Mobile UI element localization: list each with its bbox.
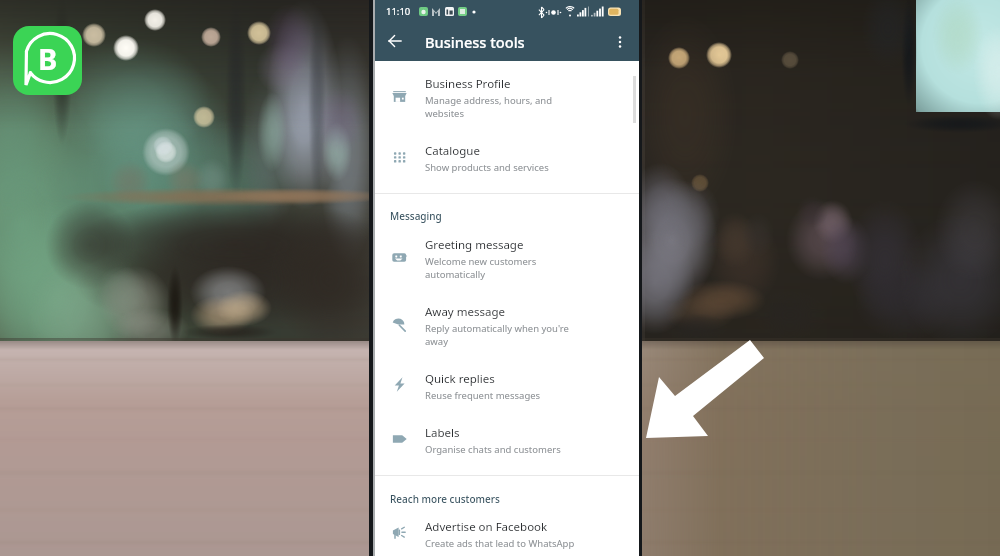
staticText: Catalogue	[425, 143, 480, 159]
staticText: Business Profile	[425, 76, 511, 92]
staticText: Welcome new customers automatically	[425, 255, 537, 281]
button[interactable]: Quick replies	[375, 364, 639, 412]
staticText: Manage address, hours, and websites	[425, 94, 553, 120]
staticText: 11:10	[386, 5, 411, 18]
button[interactable]: Away message	[375, 297, 639, 359]
staticText: Organise chats and customers	[425, 443, 561, 456]
staticText: Create ads that lead to WhatsApp	[425, 537, 575, 550]
staticText: Away message	[425, 304, 505, 320]
staticText: Reply automatically when you're away	[425, 322, 569, 348]
staticText: Quick replies	[425, 371, 495, 387]
button[interactable]: Labels	[375, 418, 639, 466]
button[interactable]: Business Profile	[375, 69, 639, 131]
staticText: Greeting message	[425, 237, 524, 253]
button[interactable]: Back	[381, 27, 409, 55]
button[interactable]: Catalogue	[375, 136, 639, 184]
staticText: Advertise on Facebook	[425, 519, 548, 535]
button[interactable]: Greeting message	[375, 230, 639, 292]
staticText: Business tools	[425, 32, 525, 52]
button[interactable]: Advertise on Facebook	[375, 512, 639, 556]
staticText: Messaging	[390, 209, 442, 223]
button[interactable]: More options	[606, 28, 634, 56]
staticText: Reuse frequent messages	[425, 389, 541, 402]
staticText: B	[38, 39, 58, 78]
staticText: Labels	[425, 425, 460, 441]
staticText: Reach more customers	[390, 492, 500, 506]
staticText: Show products and services	[425, 161, 549, 174]
button[interactable]: WhatsApp Business	[13, 26, 82, 95]
